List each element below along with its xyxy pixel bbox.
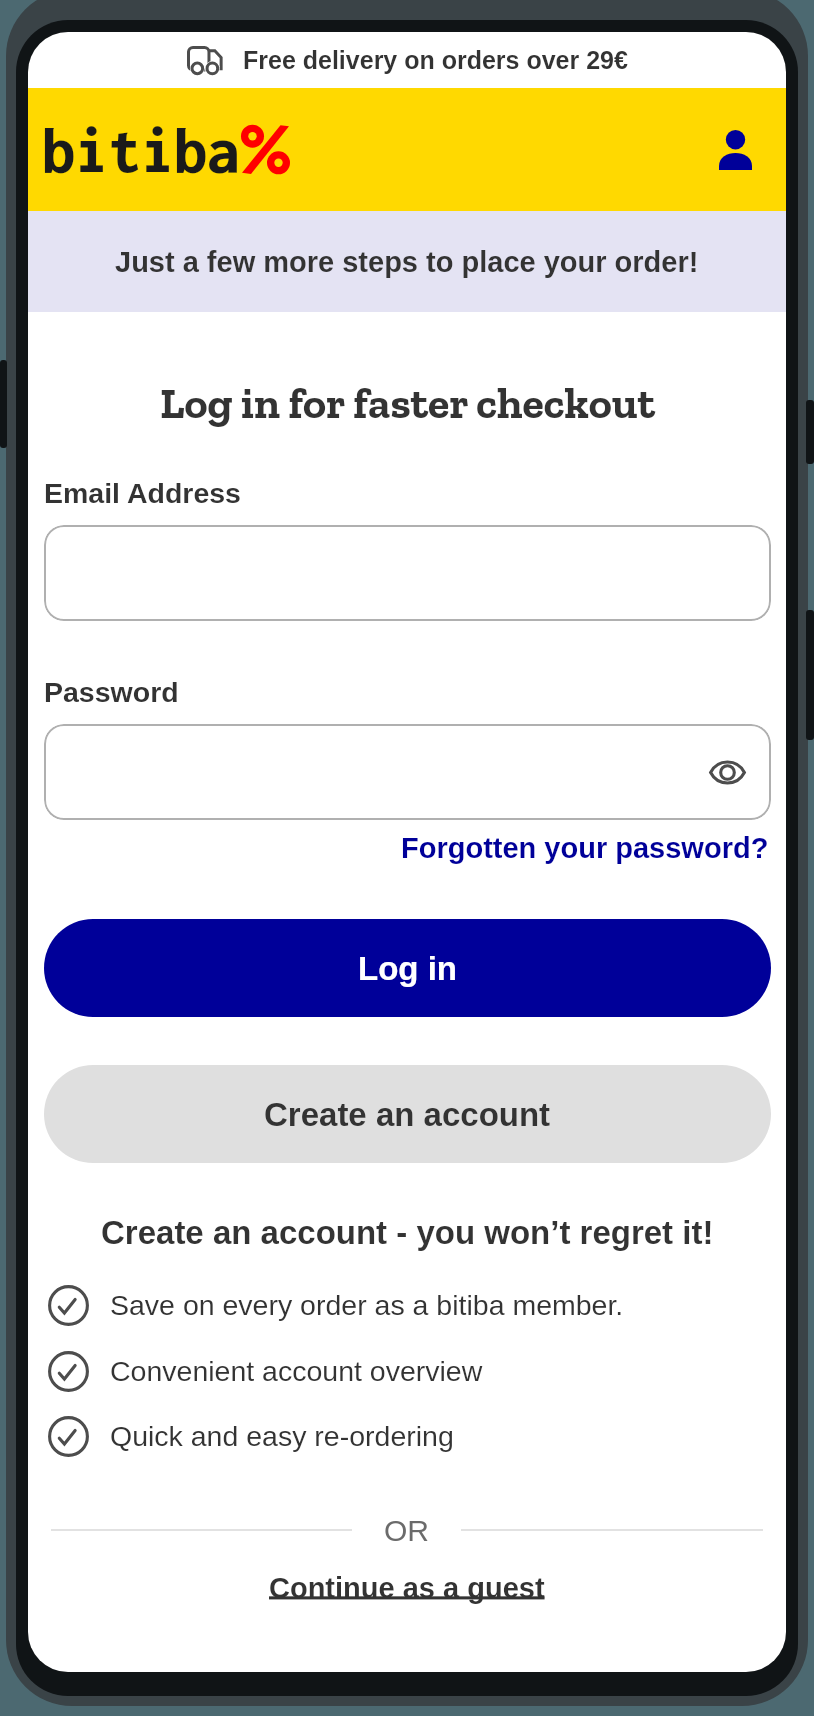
staticText: Create an account - you won’t regret it! (101, 1214, 714, 1251)
button[interactable]: Quick and easy re-ordering (48, 1412, 454, 1460)
staticText: Password (44, 676, 179, 708)
button[interactable]: Forgotten your password? (401, 832, 769, 864)
button[interactable]: Create an account (44, 1065, 771, 1163)
button[interactable]: Save on every order as a bitiba member. (48, 1281, 624, 1329)
button[interactable] (44, 525, 771, 621)
staticText: Free delivery on orders over 29€ (243, 46, 628, 74)
button[interactable]: Show password (703, 748, 751, 796)
button[interactable]: Convenient account overview (48, 1347, 483, 1395)
staticText: Email Address (44, 477, 241, 509)
staticText: Just a few more steps to place your orde… (115, 246, 699, 278)
staticText: Save on every order as a bitiba member. (110, 1289, 624, 1321)
button[interactable]: Account (699, 114, 771, 186)
staticText: bitiba (42, 115, 240, 184)
staticText: Create an account (264, 1096, 551, 1133)
button[interactable]: Continue as a guest (269, 1572, 545, 1604)
staticText: Convenient account overview (110, 1355, 483, 1387)
staticText: OR (384, 1514, 429, 1545)
button[interactable]: Log in (44, 919, 771, 1017)
staticText: Quick and easy re-ordering (110, 1420, 454, 1452)
staticText: Log in for faster checkout (160, 376, 655, 429)
staticText: Log in (358, 950, 457, 987)
